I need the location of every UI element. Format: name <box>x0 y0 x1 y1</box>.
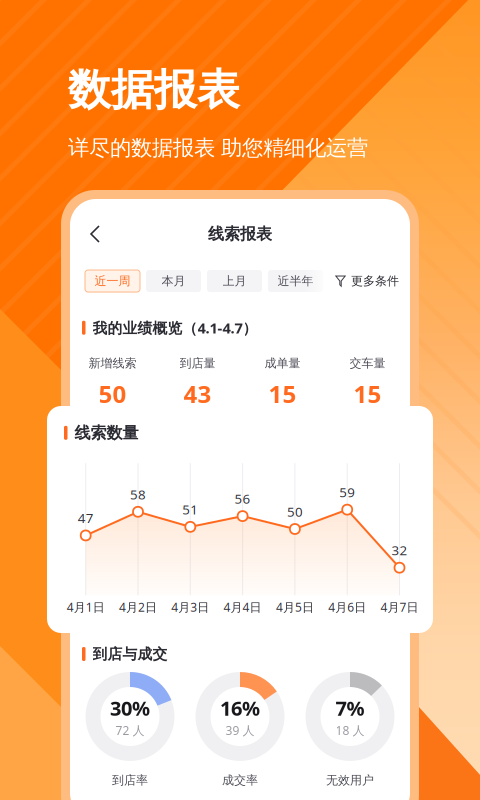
staticText: 近一周 <box>94 274 130 288</box>
staticText: 30% <box>110 695 150 721</box>
staticText: 4月1日 <box>67 599 105 615</box>
staticText: 43 <box>183 378 211 410</box>
staticText: 50 <box>98 378 126 410</box>
staticText: 32 <box>391 541 407 559</box>
staticText: 到店与成交 <box>92 645 167 663</box>
staticText: 47 <box>78 509 94 527</box>
staticText: 56 <box>235 490 251 507</box>
staticText: 成交率 <box>222 773 258 788</box>
staticText: 16% <box>220 695 260 721</box>
staticText: 4月5日 <box>276 599 314 615</box>
button[interactable]: 近一周 <box>85 270 140 292</box>
staticText: 58 <box>130 485 146 503</box>
button[interactable]: 本月 <box>146 270 201 292</box>
staticText: 4月3日 <box>171 599 209 615</box>
staticText: 成单量 <box>264 356 300 371</box>
button[interactable]: 上月 <box>207 270 262 292</box>
staticText: 我的业绩概览（4.1-4.7） <box>92 318 257 337</box>
staticText: 线索数量 <box>74 423 138 443</box>
staticText: 交车量 <box>349 356 385 371</box>
staticText: 线索报表 <box>208 224 272 244</box>
staticText: 到店量 <box>179 356 215 371</box>
staticText: 更多条件 <box>351 274 399 288</box>
button[interactable]: 近半年 <box>268 270 323 292</box>
staticText: 上月 <box>222 274 246 288</box>
button[interactable]: 返回 <box>80 219 110 249</box>
staticText: 本月 <box>161 274 185 288</box>
staticText: 到店率 <box>112 773 148 788</box>
staticText: 15 <box>268 378 296 410</box>
staticText: 51 <box>182 500 198 518</box>
staticText: 7% <box>335 695 364 721</box>
staticText: 数据报表 <box>68 64 240 116</box>
staticText: 近半年 <box>277 274 313 288</box>
staticText: 18 人 <box>335 722 364 738</box>
button[interactable]: 更多条件 <box>335 270 399 292</box>
staticText: 72 人 <box>115 722 144 738</box>
staticText: 详尽的数据报表 助您精细化运营 <box>68 135 368 161</box>
staticText: 4月7日 <box>380 599 418 615</box>
staticText: 新增线索 <box>88 356 136 371</box>
staticText: 59 <box>339 483 355 501</box>
staticText: 4月4日 <box>224 599 262 615</box>
staticText: 4月6日 <box>328 599 366 615</box>
staticText: 50 <box>287 503 303 520</box>
staticText: 4月2日 <box>119 599 157 615</box>
staticText: 无效用户 <box>326 773 374 788</box>
staticText: 39 人 <box>225 722 254 738</box>
staticText: 15 <box>353 378 381 410</box>
